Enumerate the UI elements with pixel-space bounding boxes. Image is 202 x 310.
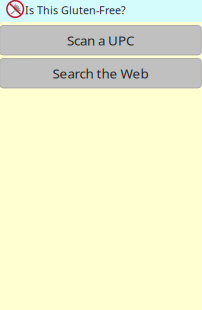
staticText: Is This Gluten-Free? (25, 3, 126, 17)
staticText: Search the Web (52, 64, 148, 82)
button[interactable]: Search the Web (0, 58, 202, 88)
staticText: Scan a UPC (67, 31, 134, 49)
button[interactable]: Scan a UPC (0, 25, 202, 55)
